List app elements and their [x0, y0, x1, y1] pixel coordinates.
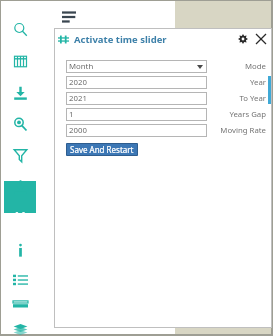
- button[interactable]: Basemap: [4, 288, 36, 320]
- staticText: Month: [69, 61, 94, 72]
- button[interactable]: Query: [4, 108, 36, 140]
- button[interactable]: 2000: [66, 124, 207, 137]
- button[interactable]: Legend: [4, 263, 36, 295]
- button[interactable]: Table: [4, 45, 36, 77]
- staticText: Years Gap: [229, 109, 266, 120]
- button[interactable]: Save And Restart: [66, 143, 138, 156]
- button[interactable]: Menu: [59, 7, 79, 27]
- staticText: 2020: [69, 77, 87, 88]
- button[interactable]: 2021: [66, 92, 207, 105]
- button[interactable]: Time slider: [4, 201, 36, 233]
- button[interactable]: 2020: [66, 76, 207, 89]
- button[interactable]: Info: [4, 234, 36, 266]
- staticText: Activate time slider: [74, 33, 167, 46]
- button[interactable]: Search: [4, 13, 36, 45]
- button[interactable]: Month: [66, 60, 207, 73]
- staticText: Year: [249, 77, 266, 88]
- button[interactable]: Import: [4, 77, 36, 109]
- staticText: To Year: [239, 93, 266, 104]
- button[interactable]: Filter: [4, 139, 36, 171]
- staticText: Mode: [245, 61, 266, 72]
- staticText: 1: [69, 109, 74, 120]
- button[interactable]: Layers: [4, 313, 36, 336]
- staticText: Save And Restart: [70, 144, 134, 155]
- button[interactable]: Close: [252, 30, 270, 48]
- staticText: 2021: [69, 93, 87, 104]
- button[interactable]: 1: [66, 108, 207, 121]
- button[interactable]: Download: [4, 170, 36, 202]
- staticText: 2000: [69, 125, 87, 136]
- button[interactable]: Settings: [234, 30, 252, 48]
- staticText: Moving Rate: [220, 125, 266, 136]
